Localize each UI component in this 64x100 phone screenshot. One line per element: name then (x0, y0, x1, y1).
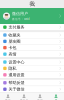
button[interactable]: 通讯录 (16, 93, 32, 100)
button[interactable]: 收藏夹 (0, 32, 64, 38)
staticText: 关于微信 (9, 87, 25, 92)
button[interactable]: 卡包 (0, 45, 64, 51)
button[interactable]: 微信 (0, 93, 16, 100)
button[interactable]: 通用设置 (0, 72, 64, 78)
button[interactable]: 帮助反馈 (0, 80, 64, 86)
button[interactable]: 我 (48, 93, 64, 100)
button[interactable]: 朋友圈 (0, 38, 64, 45)
staticText: 通用设置 (9, 72, 25, 77)
staticText: 发现 (37, 99, 43, 100)
staticText: 我 (29, 1, 34, 7)
staticText: 朋友圈 (9, 39, 21, 44)
button[interactable]: 关于微信 (0, 86, 64, 92)
button[interactable]: 设置中心 (0, 59, 64, 65)
staticText: 表情 (9, 52, 17, 57)
staticText: 隐私 (9, 66, 17, 71)
button[interactable]: 支付服务 (0, 24, 64, 30)
staticText: 微信 (5, 99, 11, 100)
staticText: 卡包 (9, 45, 17, 50)
staticText: 通讯录 (19, 99, 28, 100)
staticText: 设置中心 (9, 60, 25, 64)
staticText: 微信用户 (12, 11, 28, 16)
button[interactable]: 表情 (0, 51, 64, 57)
button[interactable]: 微信用户 (0, 8, 64, 24)
button[interactable]: 隐私 (0, 65, 64, 72)
staticText: 我 (54, 99, 57, 100)
staticText: 收藏夹 (9, 33, 21, 37)
staticText: 支付服务 (9, 25, 25, 30)
staticText: 帮助反馈 (9, 80, 25, 85)
staticText: 微信号：wxid (12, 17, 30, 21)
button[interactable]: 发现 (32, 93, 48, 100)
